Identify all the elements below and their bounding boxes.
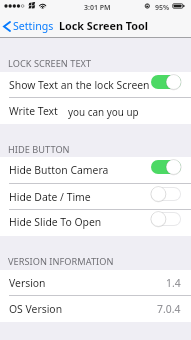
staticText: Lock Screen Tool [59,18,148,33]
staticText: Settings [13,19,54,33]
staticText: Show Text an the lock Screen [9,78,150,92]
staticText: 7.0.4 [157,302,181,316]
staticText: OS Version [9,302,63,316]
button[interactable]: Hide Slide To Open off [151,212,181,226]
staticText: VERSION INFORMATION [8,255,114,268]
button[interactable]: Hide Slide To Open [0,209,191,235]
staticText: Hide Slide To Open [9,215,102,229]
button[interactable]: Hide Date / Time [0,183,191,210]
button[interactable]: Hide Date / Time off [151,187,181,201]
button[interactable]: Show Text an the lock Screen [0,72,191,97]
button[interactable]: Hide Button Camera on [151,160,181,174]
button[interactable]: Version [0,270,191,295]
staticText: Hide Date / Time [9,190,91,204]
button[interactable]: Write Text [0,97,191,124]
staticText: Version [9,276,46,290]
button[interactable]: Hide Button Camera [0,157,191,183]
staticText: LOCK SCREEN TEXT [8,57,92,70]
staticText: 1.4 [166,276,181,290]
staticText: 95% [155,3,170,13]
staticText: you can you up [68,105,139,118]
staticText: 3:01 PM [84,3,111,13]
staticText: Write Text [9,104,58,118]
button[interactable]: OS Version [0,295,191,322]
button[interactable]: Settings [0,17,59,35]
staticText: Hide Button Camera [9,163,109,177]
button[interactable]: Show Text an the lock Screen on [151,75,181,89]
staticText: HIDE BUTTON [8,143,70,156]
